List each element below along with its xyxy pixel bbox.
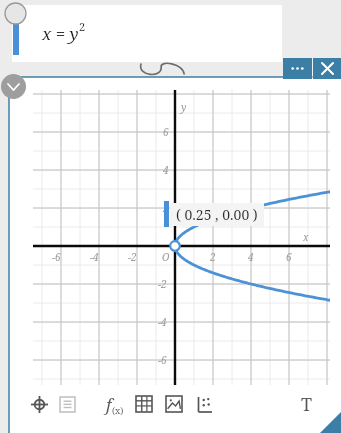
- staticText: T: [301, 392, 313, 416]
- button[interactable]: x = y: [12, 5, 282, 62]
- button[interactable]: Close: [313, 58, 341, 79]
- button[interactable]: Text tool: [295, 392, 319, 416]
- staticText: -6: [158, 353, 167, 367]
- staticText: 2: [163, 201, 169, 215]
- staticText: -4: [90, 250, 99, 264]
- staticText: 2: [79, 19, 86, 34]
- button[interactable]: Table: [132, 392, 156, 416]
- staticText: 4: [163, 163, 169, 177]
- button[interactable]: Point tool: [27, 392, 51, 416]
- staticText: y: [181, 100, 187, 114]
- staticText: -4: [158, 315, 167, 329]
- staticText: 6: [163, 125, 169, 139]
- button[interactable]: Statistics: [192, 392, 216, 416]
- button[interactable]: Expression handle: [4, 2, 27, 25]
- button[interactable]: More options: [283, 58, 312, 79]
- staticText: -2: [128, 250, 137, 264]
- staticText: 2: [210, 250, 216, 264]
- staticText: (x): [112, 404, 124, 416]
- staticText: x: [303, 230, 309, 244]
- staticText: -2: [158, 277, 167, 291]
- staticText: 4: [248, 250, 254, 264]
- button[interactable]: Image: [162, 392, 186, 416]
- staticText: O: [162, 250, 170, 264]
- button[interactable]: Collapse panel: [1, 74, 26, 99]
- staticText: f: [106, 393, 112, 416]
- button[interactable]: Function: [103, 392, 127, 416]
- button[interactable]: Notes: [55, 392, 79, 416]
- staticText: x = y: [42, 22, 79, 45]
- staticText: ( 0.25 , 0.00 ): [176, 205, 258, 224]
- staticText: 6: [286, 250, 292, 264]
- staticText: -6: [52, 250, 61, 264]
